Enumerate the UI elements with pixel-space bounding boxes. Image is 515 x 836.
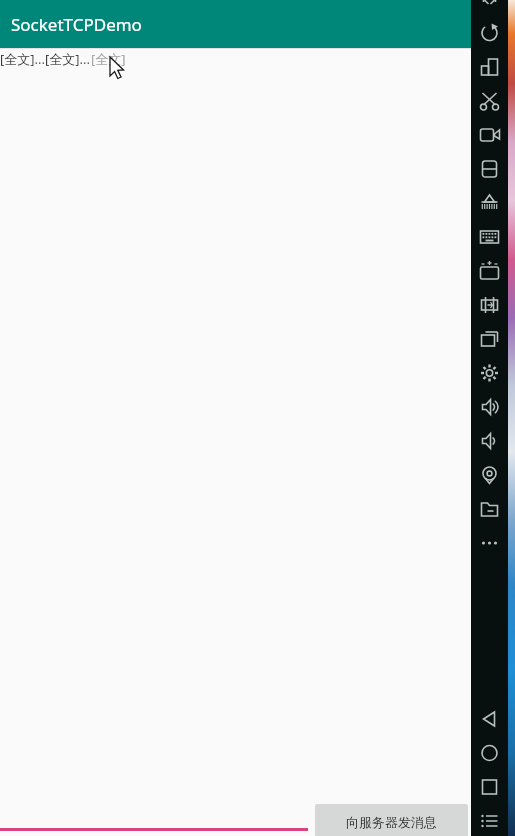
- button[interactable]: Install APK: [471, 254, 508, 288]
- button[interactable]: Folder: [471, 492, 508, 526]
- button[interactable]: Recents: [471, 768, 508, 802]
- button[interactable]: Cut: [471, 84, 508, 118]
- button[interactable]: Fold: [471, 152, 508, 186]
- button[interactable]: [全文]...[全文]...: [0, 49, 471, 69]
- button[interactable]: Volume down: [471, 424, 508, 458]
- button[interactable]: Rotate device: [471, 50, 508, 84]
- staticText: SocketTCPDemo: [11, 13, 142, 36]
- button[interactable]: Back: [471, 700, 508, 734]
- button[interactable]: Multi window: [471, 322, 508, 356]
- staticText: [全文]: [91, 50, 126, 68]
- button[interactable]: Camera: [471, 118, 508, 152]
- button[interactable]: Fingerprint: [471, 186, 508, 220]
- button[interactable]: Settings: [471, 356, 508, 390]
- staticText: 向服务器发消息: [346, 814, 437, 830]
- button[interactable]: [0, 805, 308, 831]
- button[interactable]: Snapshot: [471, 288, 508, 322]
- button[interactable]: Volume up: [471, 390, 508, 424]
- button[interactable]: Home: [471, 734, 508, 768]
- button[interactable]: SocketTCPDemo: [0, 0, 471, 48]
- button[interactable]: Rotate: [471, 16, 508, 50]
- button[interactable]: More: [471, 526, 508, 560]
- button[interactable]: Menu: [471, 802, 508, 836]
- button[interactable]: Keyboard: [471, 220, 508, 254]
- button[interactable]: Location: [471, 458, 508, 492]
- staticText: [全文]...[全文]...: [0, 50, 91, 68]
- button[interactable]: 向服务器发消息: [315, 804, 468, 836]
